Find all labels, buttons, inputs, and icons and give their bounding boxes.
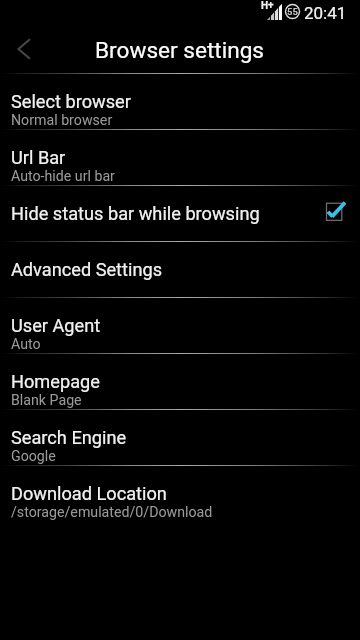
button[interactable]: Homepage xyxy=(0,354,360,410)
staticText: Blank Page xyxy=(11,392,82,409)
button[interactable]: Back xyxy=(0,25,48,73)
staticText: User Agent xyxy=(11,315,101,336)
button[interactable]: Download Location xyxy=(0,466,360,522)
staticText: 55 xyxy=(287,6,298,17)
staticText: Advanced Settings xyxy=(11,259,163,280)
staticText: Auto-hide url bar xyxy=(11,168,115,185)
staticText: Url Bar xyxy=(11,147,66,168)
staticText: Normal browser xyxy=(11,112,113,129)
button[interactable]: User Agent xyxy=(0,298,360,354)
staticText: Browser settings xyxy=(95,37,265,63)
staticText: H+ xyxy=(261,0,274,12)
staticText: Search Engine xyxy=(11,427,127,448)
staticText: Download Location xyxy=(11,483,167,504)
button[interactable]: Search Engine xyxy=(0,410,360,466)
button[interactable]: Advanced Settings xyxy=(0,242,360,298)
staticText: Select browser xyxy=(11,91,131,112)
button[interactable]: Select browser xyxy=(0,74,360,130)
button[interactable]: Url Bar xyxy=(0,130,360,186)
staticText: /storage/emulated/0/Download xyxy=(11,504,213,521)
staticText: Hide status bar while browsing xyxy=(11,203,260,224)
staticText: 20:41 xyxy=(304,3,347,23)
staticText: Google xyxy=(11,448,56,465)
button[interactable]: Hide status bar while browsing xyxy=(0,186,360,242)
staticText: Homepage xyxy=(11,371,100,392)
staticText: Auto xyxy=(11,336,41,353)
